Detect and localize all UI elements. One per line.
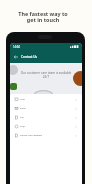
button[interactable]: FAQs [10, 122, 82, 131]
staticText: FAQs [20, 125, 26, 128]
button[interactable]: Chat [10, 95, 82, 104]
staticText: The fastest way to get in touch [0, 10, 86, 23]
staticText: Contact Us [21, 55, 38, 59]
staticText: Submit App Feedback [20, 134, 43, 137]
button[interactable]: Call [10, 113, 82, 122]
button[interactable]: Submit App Feedback [10, 131, 82, 140]
staticText: Email [20, 107, 26, 110]
button[interactable]: Back [12, 53, 19, 60]
staticText: Our customer care team is available 24/7 [13, 71, 79, 79]
staticText: Chat [20, 98, 25, 101]
staticText: 14:04 [13, 45, 20, 49]
button[interactable]: Email [10, 104, 82, 113]
staticText: Call [20, 116, 24, 119]
